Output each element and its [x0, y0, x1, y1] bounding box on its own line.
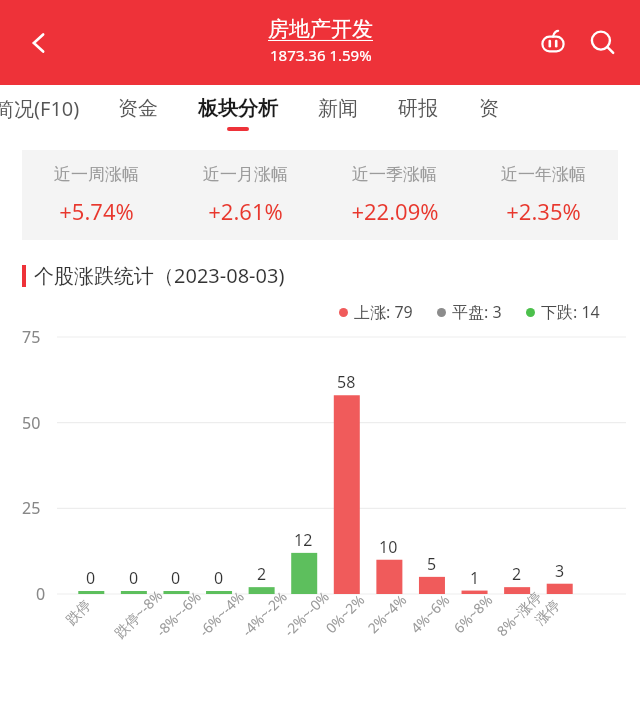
- staticText: 1873.36 1.59%: [270, 45, 372, 65]
- staticText: 0: [36, 583, 46, 605]
- staticText: 近一年涨幅: [501, 164, 586, 185]
- staticText: 跌停~-8%: [110, 585, 167, 642]
- button[interactable]: 新闻: [298, 85, 378, 141]
- staticText: -6%~-4%: [195, 587, 248, 640]
- staticText: 58: [337, 371, 356, 393]
- staticText: 上涨: 79: [354, 301, 413, 323]
- staticText: 资金: [118, 96, 158, 121]
- staticText: 10: [379, 536, 398, 558]
- staticText: 6%~8%: [449, 590, 497, 637]
- staticText: -4%~-2%: [238, 587, 291, 640]
- button[interactable]: 上涨: 79: [339, 301, 413, 323]
- staticText: -2%~-0%: [280, 587, 333, 640]
- staticText: 资: [479, 96, 499, 121]
- staticText: 5: [427, 553, 437, 575]
- staticText: 下跌: 14: [541, 301, 600, 323]
- button[interactable]: 简况(F10): [0, 85, 98, 141]
- staticText: 2: [257, 563, 267, 585]
- staticText: 4%~6%: [406, 590, 454, 637]
- staticText: 近一月涨幅: [203, 164, 288, 185]
- staticText: 0: [86, 567, 96, 589]
- staticText: 跌停: [63, 597, 95, 629]
- staticText: 近一季涨幅: [352, 164, 437, 185]
- staticText: +2.35%: [506, 196, 581, 226]
- staticText: 研报: [398, 96, 438, 121]
- staticText: +2.61%: [208, 196, 283, 226]
- button[interactable]: 资金: [98, 85, 178, 141]
- staticText: 简况(F10): [0, 95, 80, 122]
- button[interactable]: 近一年涨幅: [469, 164, 618, 226]
- staticText: 75: [22, 326, 41, 348]
- staticText: 0: [171, 567, 181, 589]
- staticText: 0%~2%: [321, 590, 369, 637]
- staticText: 新闻: [318, 96, 358, 121]
- staticText: 板块分析: [198, 96, 278, 121]
- staticText: 1: [470, 567, 480, 589]
- staticText: 25: [22, 497, 41, 519]
- button[interactable]: 平盘: 3: [437, 301, 502, 323]
- staticText: 50: [22, 412, 41, 434]
- staticText: 个股涨跌统计（2023-08-03): [34, 262, 285, 289]
- staticText: 2%~4%: [363, 590, 411, 637]
- button[interactable]: 近一季涨幅: [320, 164, 469, 226]
- button[interactable]: 房地产开发: [268, 16, 373, 65]
- button[interactable]: 下跌: 14: [526, 301, 600, 323]
- button[interactable]: 研报: [378, 85, 458, 141]
- staticText: 平盘: 3: [452, 301, 502, 323]
- staticText: 涨停: [532, 597, 564, 629]
- staticText: 8%~涨停: [492, 587, 545, 640]
- button[interactable]: Search: [580, 20, 626, 66]
- staticText: 0: [214, 567, 224, 589]
- staticText: 0: [129, 567, 139, 589]
- staticText: 房地产开发: [268, 16, 373, 42]
- button[interactable]: 板块分析: [178, 85, 298, 141]
- button[interactable]: 近一月涨幅: [171, 164, 320, 226]
- button[interactable]: Back: [14, 18, 64, 68]
- staticText: 2: [512, 563, 522, 585]
- staticText: 12: [294, 529, 313, 551]
- staticText: -8%~-6%: [152, 587, 205, 640]
- button[interactable]: AI assistant: [530, 20, 576, 66]
- staticText: +5.74%: [59, 196, 134, 226]
- staticText: +22.09%: [351, 196, 439, 226]
- button[interactable]: 资: [458, 85, 520, 141]
- staticText: 3: [555, 560, 565, 582]
- staticText: 近一周涨幅: [54, 164, 139, 185]
- button[interactable]: 近一周涨幅: [22, 164, 171, 226]
